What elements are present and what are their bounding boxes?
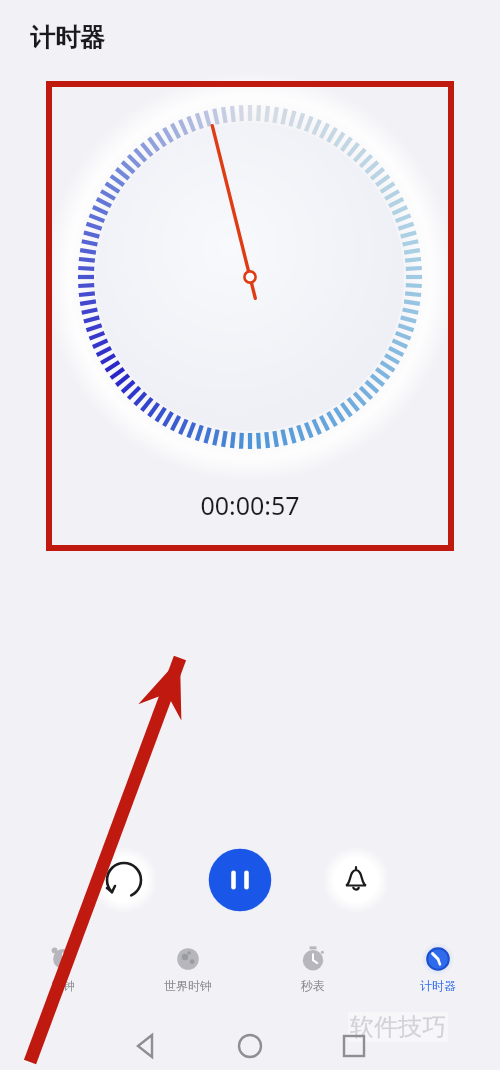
button[interactable]: 闹钟 (0, 940, 125, 993)
button[interactable]: 世界时钟 (125, 940, 250, 993)
button[interactable]: 秒表 (250, 940, 375, 993)
staticText: 计时器 (420, 978, 456, 993)
staticText: 闹钟 (51, 978, 75, 993)
button[interactable]: Pause (206, 846, 274, 914)
staticText: 00:00:57 (200, 488, 300, 522)
button[interactable]: Ringtone (322, 846, 390, 914)
staticText: 计时器 (30, 22, 105, 53)
staticText: 秒表 (301, 978, 325, 993)
staticText: 软件技巧 (350, 1012, 446, 1042)
button[interactable]: 计时器 (375, 940, 500, 993)
staticText: 世界时钟 (164, 978, 212, 993)
button[interactable]: Reset (90, 846, 158, 914)
